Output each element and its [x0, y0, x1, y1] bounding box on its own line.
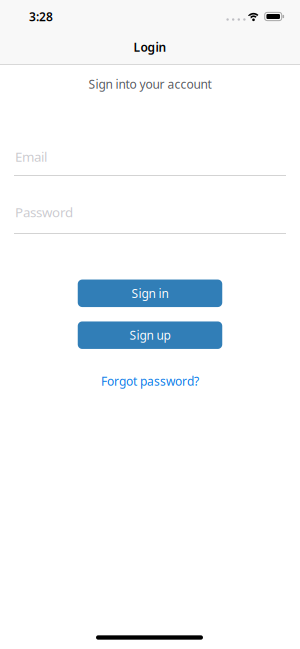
button[interactable]: Password: [14, 203, 286, 235]
staticText: Sign in: [131, 285, 168, 301]
staticText: Email: [15, 148, 47, 165]
button[interactable]: Forgot password?: [101, 373, 199, 389]
staticText: Password: [15, 203, 73, 221]
staticText: Sign into your account: [88, 76, 211, 92]
button[interactable]: Sign in: [78, 280, 222, 307]
staticText: 3:28: [29, 8, 53, 24]
button[interactable]: Email: [14, 147, 286, 177]
staticText: Forgot password?: [101, 373, 199, 389]
staticText: Sign up: [129, 327, 170, 343]
staticText: Login: [133, 39, 166, 55]
button[interactable]: Sign up: [78, 321, 222, 349]
